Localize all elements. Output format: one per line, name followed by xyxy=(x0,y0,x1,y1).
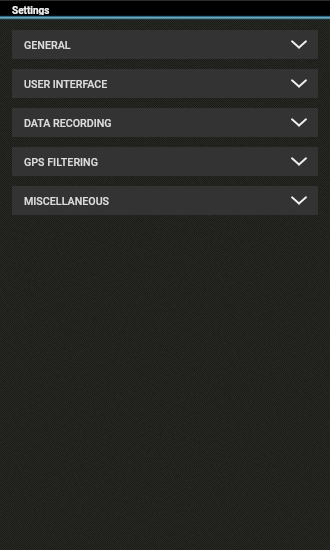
button[interactable]: USER INTERFACE xyxy=(12,69,318,98)
staticText: GPS FILTERING xyxy=(24,156,98,169)
other: Expand USER INTERFACE xyxy=(291,79,307,89)
button[interactable]: DATA RECORDING xyxy=(12,108,318,137)
button[interactable]: MISCELLANEOUS xyxy=(12,186,318,215)
staticText: Settings xyxy=(12,5,50,15)
other: Expand MISCELLANEOUS xyxy=(291,196,307,206)
staticText: MISCELLANEOUS xyxy=(24,195,110,208)
button[interactable]: GENERAL xyxy=(12,30,318,59)
other: Expand DATA RECORDING xyxy=(291,118,307,128)
staticText: GENERAL xyxy=(24,39,71,52)
other: Expand GENERAL xyxy=(291,40,307,50)
other: Expand GPS FILTERING xyxy=(291,157,307,167)
staticText: DATA RECORDING xyxy=(24,117,112,130)
staticText: USER INTERFACE xyxy=(24,78,108,91)
button[interactable]: GPS FILTERING xyxy=(12,147,318,176)
